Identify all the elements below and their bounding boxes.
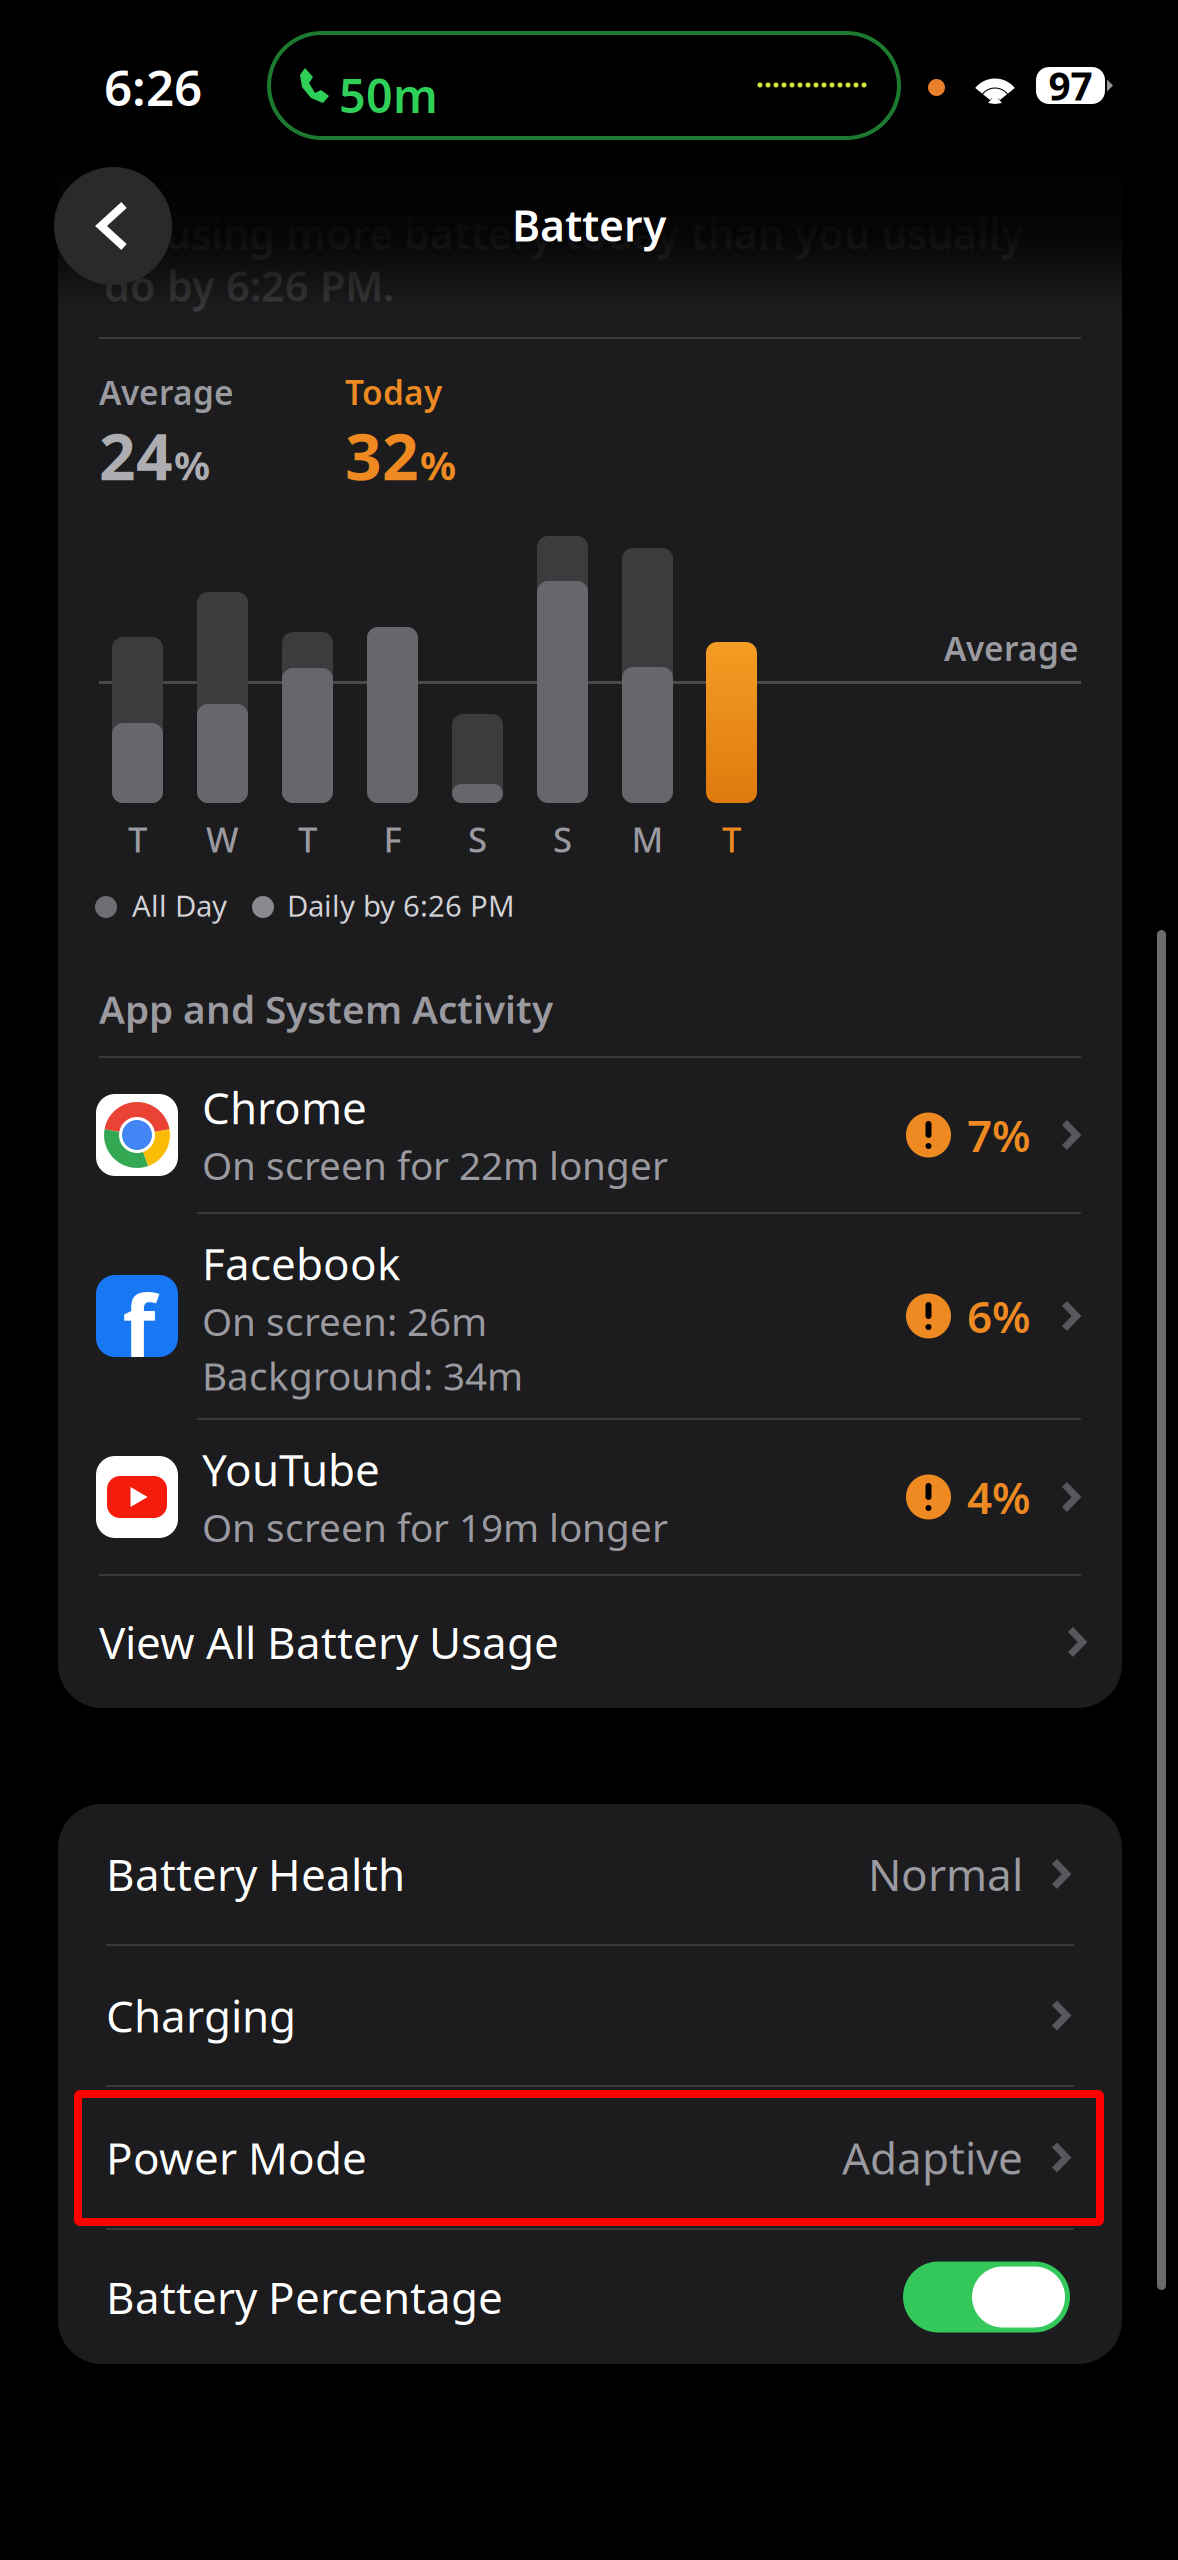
staticText: 7%: [967, 1106, 1031, 1164]
staticText: Normal: [868, 1845, 1023, 1903]
staticText: YouTube: [202, 1440, 380, 1498]
staticText: 32: [345, 413, 419, 498]
button[interactable]: View All Battery Usage: [58, 1576, 1122, 1708]
staticText: f: [122, 1268, 155, 1382]
staticText: %: [174, 438, 210, 491]
staticText: do by 6:26 PM.: [104, 258, 394, 313]
staticText: F: [383, 816, 401, 862]
staticText: On screen for 19m longer: [202, 1501, 668, 1553]
staticText: 6:26: [104, 54, 202, 119]
staticText: S: [553, 816, 572, 862]
button[interactable]: Charging: [58, 1946, 1122, 2085]
staticText: Daily by 6:26 PM: [287, 886, 515, 925]
staticText: 24: [99, 413, 173, 498]
staticText: Average: [99, 370, 234, 414]
staticText: All Day: [132, 886, 227, 925]
staticText: 6%: [967, 1287, 1031, 1345]
button[interactable]: Chrome: [58, 1058, 1122, 1212]
button[interactable]: Back: [54, 167, 172, 285]
staticText: 're using more battery today than you us…: [104, 206, 1024, 261]
staticText: Battery: [512, 197, 666, 253]
staticText: %: [420, 438, 456, 491]
staticText: Average: [944, 626, 1079, 670]
staticText: Facebook: [202, 1234, 400, 1292]
button[interactable]: YouTube: [58, 1420, 1122, 1574]
staticText: App and System Activity: [99, 983, 553, 1034]
staticText: M: [631, 816, 663, 862]
staticText: Charging: [106, 1986, 296, 2045]
staticText: Background: 34m: [202, 1350, 523, 1401]
staticText: 50m: [339, 64, 438, 126]
staticText: W: [206, 816, 239, 862]
staticText: View All Battery Usage: [99, 1613, 559, 1671]
staticText: On screen: 26m: [202, 1295, 487, 1347]
staticText: Adaptive: [842, 2128, 1023, 2187]
button[interactable]: f: [58, 1214, 1122, 1418]
staticText: S: [468, 816, 487, 862]
staticText: Today: [345, 370, 442, 414]
staticText: Power Mode: [106, 2128, 367, 2187]
staticText: Battery Health: [106, 1845, 405, 1903]
staticText: Chrome: [202, 1078, 367, 1136]
button[interactable]: Power Mode: [58, 2087, 1122, 2228]
staticText: T: [298, 816, 317, 862]
staticText: T: [128, 816, 147, 862]
staticText: T: [722, 816, 741, 862]
staticText: 97: [1048, 60, 1092, 111]
staticText: Battery Percentage: [106, 2268, 503, 2326]
button[interactable]: Battery Health: [58, 1804, 1122, 1944]
staticText: On screen for 22m longer: [202, 1139, 668, 1191]
staticText: 4%: [967, 1468, 1031, 1526]
button[interactable]: Battery Percentage: [58, 2230, 1122, 2364]
